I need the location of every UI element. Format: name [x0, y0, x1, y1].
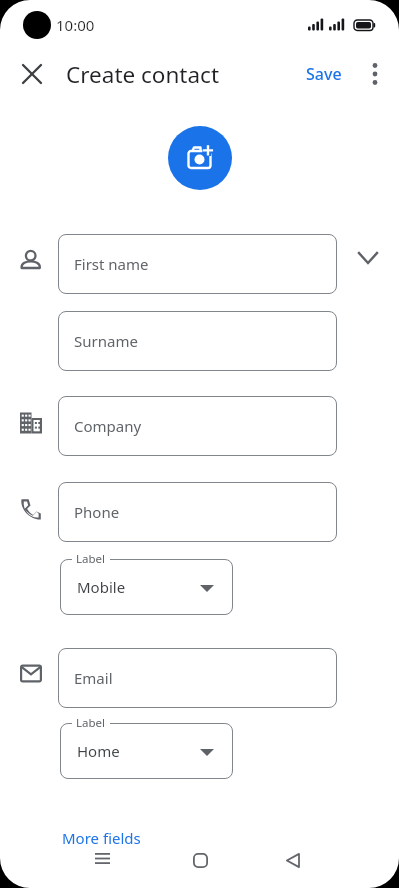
button[interactable] — [352, 242, 384, 274]
button[interactable] — [87, 843, 117, 873]
staticText: First name — [74, 254, 149, 274]
staticText: Label — [76, 551, 106, 567]
staticText: Home — [77, 741, 120, 761]
staticText: Phone — [74, 502, 120, 522]
staticText: Save — [306, 63, 342, 85]
staticText: Surname — [74, 331, 138, 351]
button[interactable] — [168, 126, 232, 190]
button[interactable] — [361, 56, 389, 92]
button[interactable] — [278, 845, 308, 875]
button[interactable] — [185, 845, 215, 875]
staticText: More fields — [62, 828, 141, 848]
button[interactable]: More fields — [62, 825, 141, 851]
button[interactable]: First name — [58, 234, 337, 294]
staticText: Label — [76, 715, 106, 731]
button[interactable] — [14, 56, 50, 92]
button[interactable]: Phone — [58, 482, 337, 542]
staticText: Email — [74, 668, 113, 688]
button[interactable]: Company — [58, 396, 337, 456]
button[interactable]: Surname — [58, 311, 337, 371]
staticText: Create contact — [66, 59, 220, 90]
staticText: Mobile — [77, 577, 126, 597]
button[interactable]: Mobile — [60, 559, 233, 615]
button[interactable]: Email — [58, 648, 337, 708]
staticText: Company — [74, 416, 142, 436]
staticText: 10:00 — [56, 15, 95, 35]
button[interactable]: Save — [298, 56, 350, 92]
button[interactable]: Home — [60, 723, 233, 779]
